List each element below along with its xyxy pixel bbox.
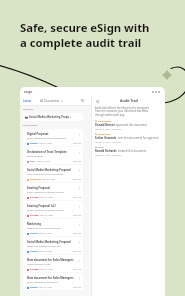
staticText: Social Media Marketing Proposal: [27, 240, 78, 244]
staticText: Social Media Marketing Propo...: [29, 115, 72, 119]
button[interactable]: Existing Proposal: [23, 183, 83, 200]
staticText: Justin Alexander To Kolikov Alexandria: [27, 137, 81, 140]
staticText: May 04, 2023: [39, 286, 52, 289]
staticText: March 4, 2021, 4:30 PM: [95, 127, 122, 130]
staticText: a complete audit trail: [20, 35, 142, 50]
staticText: Marketing: [27, 222, 78, 226]
staticText: Donald Benton: [95, 123, 115, 127]
staticText: SIGNED: [30, 250, 38, 253]
staticText: DOCUMENTS: [23, 124, 38, 127]
staticText: May 04, 2023: [40, 214, 53, 217]
staticText: sent this document for approval: [118, 136, 159, 140]
staticText: Existing Proposal: [27, 186, 78, 190]
staticText: Robert Fox to Brooklyn Simmons: [27, 245, 81, 248]
staticText: Justin Alexander To Beckton Scenery: [27, 191, 81, 194]
button[interactable]: Social Media Marketing Proposal: [23, 165, 83, 182]
staticText: IN REVIEW: [98, 132, 111, 135]
button[interactable]: Latest: [23, 99, 32, 103]
button[interactable]: New document for Sales Managers: [23, 273, 83, 290]
staticText: May 04, 2023: [39, 250, 52, 253]
staticText: May 04, 2023: [37, 160, 50, 163]
staticText: EXPIRED: [30, 196, 39, 199]
staticText: May 04, 2023: [40, 196, 53, 199]
button[interactable]: Social Media Marketing Propo...: [23, 113, 83, 121]
staticText: March 4, 2021, 4:30 PM: [95, 140, 122, 143]
staticText: EXPIRED: [30, 214, 39, 217]
staticText: Esther Howards: [95, 136, 117, 140]
staticText: SIGNED: [30, 142, 38, 145]
staticText: All Documents: [40, 99, 60, 103]
button[interactable]: New document for Sales Managers: [23, 255, 83, 272]
staticText: FOLDERS: [23, 108, 34, 111]
staticText: 09:21:05: [73, 160, 81, 163]
staticText: approved this document: [116, 123, 147, 127]
staticText: Justin Alexander To Beckton Scenery: [27, 209, 81, 212]
staticText: 09:21:05: [73, 286, 81, 289]
staticText: SIGNED: [30, 286, 38, 289]
staticText: Audit Trail: [120, 98, 138, 103]
button[interactable]: Search: [79, 97, 86, 104]
staticText: 09:21:05: [73, 268, 81, 271]
staticText: 09:21:05: [73, 232, 81, 235]
staticText: Audit trail defines the lifecycle of a d…: [95, 106, 153, 116]
staticText: 09:21:05: [73, 214, 81, 217]
staticText: May 04, 2023: [42, 178, 55, 181]
staticText: March 4, 2021, 4:30 PM: [95, 153, 122, 156]
staticText: 09:21:05: [73, 178, 81, 181]
staticText: Declaration of Trust Template: [27, 150, 78, 154]
staticText: SIGNED: [30, 232, 38, 235]
staticText: SENT: [98, 145, 104, 148]
button[interactable]: Social Media Marketing Proposal: [23, 237, 83, 254]
staticText: 09:21:05: [73, 196, 81, 199]
staticText: Existing Proposal (v2): [27, 204, 78, 208]
staticText: Esther Howards to Director Zimmer: [27, 173, 81, 176]
staticText: Safe, secure eSign with: [20, 20, 150, 35]
button[interactable]: Declaration of Trust Template: [23, 147, 83, 164]
staticText: Jocelyn Zimmer to sign: [27, 263, 81, 266]
staticText: Robert Fox to Brooklyn Simmons: [27, 227, 81, 230]
staticText: May 04, 2023: [39, 142, 52, 145]
staticText: 09:21:05: [73, 142, 81, 145]
staticText: EXPIRED: [30, 268, 39, 271]
staticText: Social Media Marketing Proposal: [27, 168, 78, 172]
button[interactable]: Digital Proposal: [23, 129, 83, 146]
staticText: May 04, 2023: [40, 268, 53, 271]
staticText: Latest: [23, 99, 32, 103]
staticText: New document for Sales Managers: [27, 276, 78, 280]
staticText: Digital Proposal: [27, 132, 78, 136]
button[interactable]: All Documents: [40, 99, 63, 103]
staticText: esign: [24, 90, 33, 94]
staticText: Justin Alexander to Brooklyn S.: [27, 281, 81, 284]
staticText: IN REVIEW: [30, 178, 41, 181]
button[interactable]: Existing Proposal (v2): [23, 201, 83, 218]
button[interactable]: Marketing: [23, 219, 83, 236]
staticText: created this document: [118, 149, 147, 153]
staticText: New document for Sales Managers: [27, 258, 78, 262]
staticText: Ronald Richards: [95, 149, 117, 153]
staticText: Esther Howards: [27, 155, 81, 158]
staticText: APPROVED: [98, 119, 111, 122]
staticText: SENT: [30, 160, 36, 163]
button[interactable]: Share: [95, 99, 99, 103]
staticText: May 04, 2023: [39, 232, 52, 235]
staticText: 09:21:05: [73, 250, 81, 253]
